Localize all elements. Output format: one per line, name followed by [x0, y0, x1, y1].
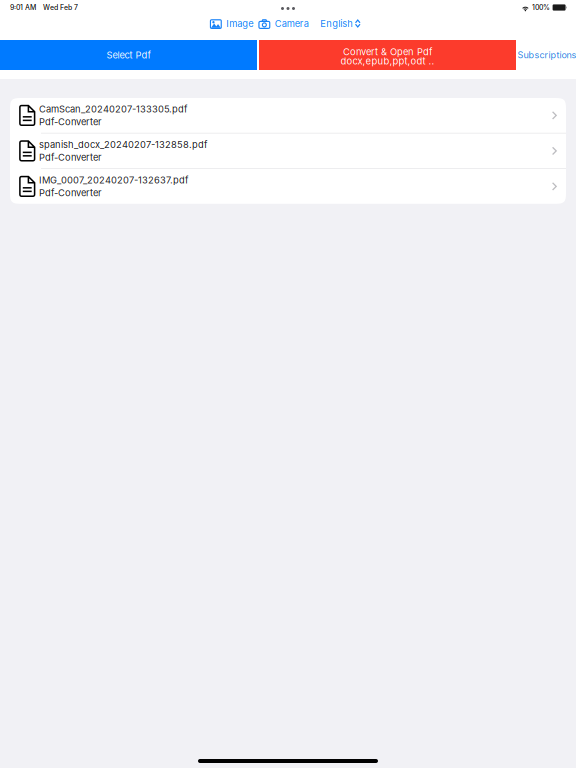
staticText: Pdf-Converter: [39, 116, 102, 127]
staticText: docx,epub,ppt,odt ..: [340, 55, 434, 67]
staticText: 9:01 AM: [10, 3, 36, 12]
button[interactable]: Select Pdf: [0, 40, 257, 70]
button[interactable]: English: [316, 18, 370, 29]
staticText: Camera: [275, 18, 309, 29]
staticText: spanish_docx_20240207-132858.pdf: [39, 139, 207, 150]
staticText: Subscriptions: [517, 49, 576, 60]
button[interactable]: CamScan_20240207-133305.pdf: [10, 98, 566, 133]
button[interactable]: spanish_docx_20240207-132858.pdf: [10, 133, 566, 169]
staticText: IMG_0007_20240207-132637.pdf: [39, 174, 188, 186]
button[interactable]: IMG_0007_20240207-132637.pdf: [10, 169, 566, 204]
staticText: Pdf-Converter: [39, 152, 102, 163]
staticText: Convert & Open Pdf: [343, 46, 432, 57]
staticText: Select Pdf: [106, 49, 150, 61]
staticText: CamScan_20240207-133305.pdf: [39, 103, 187, 115]
staticText: Wed Feb 7: [43, 3, 78, 12]
button[interactable]: Convert & Open Pdf: [259, 40, 516, 70]
staticText: Pdf-Converter: [39, 187, 102, 198]
button[interactable]: Subscriptions: [518, 40, 576, 70]
staticText: 100%: [532, 3, 550, 12]
staticText: English: [320, 18, 353, 29]
staticText: Image: [226, 18, 253, 29]
button[interactable]: Camera: [256, 18, 311, 29]
button[interactable]: Image: [206, 18, 256, 29]
